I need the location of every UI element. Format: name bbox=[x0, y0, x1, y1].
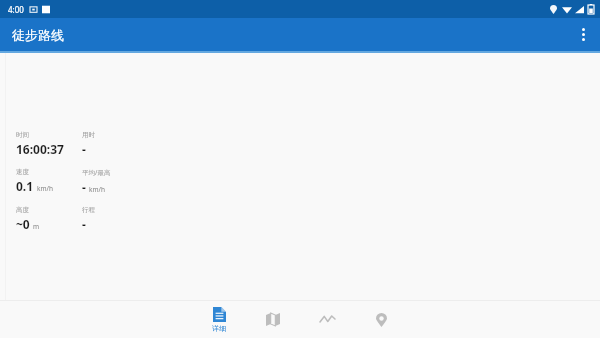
staticText: 平均/最高 bbox=[82, 168, 111, 177]
staticText: 时间 bbox=[16, 131, 29, 139]
button[interactable]: Location bbox=[354, 301, 408, 338]
staticText: 速度 bbox=[16, 168, 29, 176]
staticText: m bbox=[33, 222, 40, 231]
staticText: 4:00 bbox=[8, 4, 24, 15]
staticText: 行程 bbox=[82, 206, 95, 214]
staticText: 16:00:37 bbox=[16, 141, 64, 157]
staticText: - bbox=[82, 216, 86, 232]
staticText: 详细 bbox=[212, 324, 226, 333]
button[interactable]: More options bbox=[566, 18, 600, 51]
button[interactable]: Chart bbox=[300, 301, 354, 338]
staticText: 高度 bbox=[16, 206, 29, 214]
staticText: - bbox=[82, 141, 86, 157]
staticText: 0.1 bbox=[16, 178, 34, 194]
button[interactable]: 详细 bbox=[192, 301, 246, 338]
button[interactable]: Map bbox=[246, 301, 300, 338]
staticText: - bbox=[82, 179, 86, 195]
staticText: 用时 bbox=[82, 131, 95, 139]
staticText: 徒步路线 bbox=[12, 27, 64, 43]
staticText: km/h bbox=[89, 185, 105, 194]
staticText: km/h bbox=[37, 184, 53, 193]
staticText: ~0 bbox=[16, 216, 30, 232]
